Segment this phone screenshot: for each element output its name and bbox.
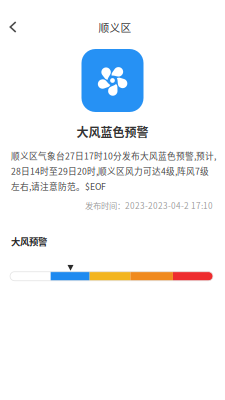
staticText: 顺义区	[98, 19, 131, 35]
button[interactable]: Back	[2, 13, 24, 41]
staticText: 大风预警	[11, 234, 47, 248]
staticText: 大风蓝色预警	[76, 123, 148, 140]
staticText: 发布时间：2023-2023-04-2 17:10	[85, 199, 213, 211]
staticText: 顺义区气象台27日17时10分发布大风蓝色预警,预计,28日14时至29日20时…	[11, 149, 216, 192]
